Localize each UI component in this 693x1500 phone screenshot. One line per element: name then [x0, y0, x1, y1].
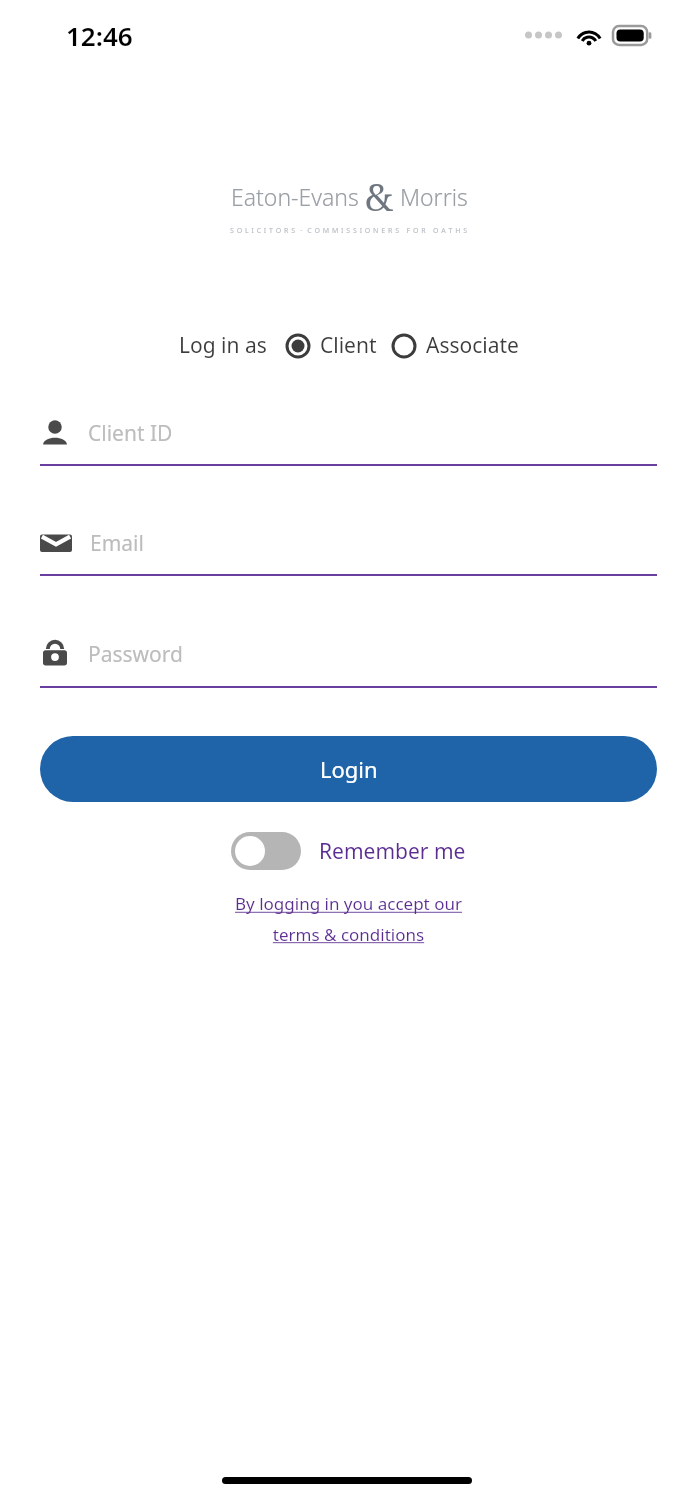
staticText: 12:46 [66, 18, 133, 53]
staticText: Associate [426, 331, 519, 360]
button[interactable]: Email [40, 528, 657, 576]
button[interactable]: Associate [391, 331, 519, 360]
staticText: By logging in you accept our terms & con… [235, 892, 462, 946]
staticText: Morris [394, 181, 468, 212]
button[interactable]: Client [285, 331, 377, 360]
staticText: Log in as [179, 331, 267, 360]
staticText: Client ID [88, 419, 173, 448]
staticText: Email [90, 529, 144, 558]
staticText: Password [88, 640, 183, 669]
other: User [40, 418, 70, 448]
button[interactable]: Remember me [231, 832, 466, 870]
staticText: S O L I C I T O R S · C O M M I S S I O … [230, 226, 468, 236]
button[interactable]: By logging in you accept our terms & con… [40, 892, 657, 946]
staticText: Eaton-Evans [231, 181, 365, 212]
button[interactable]: User [40, 418, 657, 466]
other: Password [40, 638, 70, 670]
staticText: Remember me [319, 837, 466, 866]
staticText: Client [320, 331, 377, 360]
staticText: & [365, 170, 394, 222]
button[interactable]: Login [40, 736, 657, 802]
button[interactable]: Password [40, 638, 657, 688]
staticText: Login [320, 754, 378, 784]
other: Email [40, 528, 72, 558]
